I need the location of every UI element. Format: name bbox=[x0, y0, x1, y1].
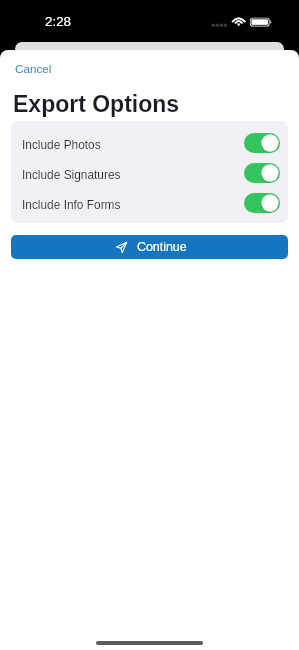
button[interactable]: Include Signatures bbox=[11, 158, 288, 188]
staticText: Include Info Forms bbox=[22, 198, 121, 211]
button[interactable]: Continue bbox=[11, 235, 288, 259]
other: Toggle Include Signatures bbox=[244, 163, 280, 183]
button[interactable]: Cancel bbox=[11, 60, 56, 77]
other: Toggle Include Photos bbox=[244, 133, 280, 153]
staticText: Continue bbox=[137, 240, 187, 254]
staticText: Include Signatures bbox=[22, 168, 121, 181]
button[interactable]: Include Photos bbox=[11, 128, 288, 158]
staticText: Include Photos bbox=[22, 138, 101, 151]
staticText: Export Options bbox=[13, 91, 180, 117]
button[interactable]: Include Info Forms bbox=[11, 188, 288, 218]
staticText: Cancel bbox=[15, 62, 52, 75]
staticText: 2:28 bbox=[45, 14, 72, 29]
other: Toggle Include Info Forms bbox=[244, 193, 280, 213]
